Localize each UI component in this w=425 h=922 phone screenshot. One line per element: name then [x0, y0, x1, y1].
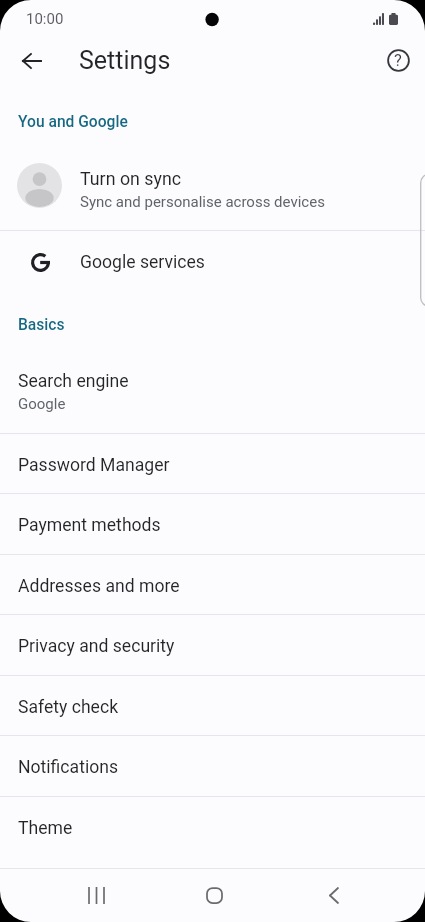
button[interactable]: Google services: [0, 230, 425, 295]
staticText: You and Google: [18, 113, 128, 131]
button[interactable]: Help and feedback: [374, 37, 422, 84]
staticText: Search engine: [18, 371, 129, 392]
button[interactable]: Navigate up: [7, 37, 55, 84]
staticText: Addresses and more: [18, 576, 180, 597]
staticText: Settings: [79, 46, 171, 75]
staticText: Theme: [18, 818, 73, 839]
button[interactable]: Recent apps: [61, 869, 131, 922]
staticText: Turn on sync: [80, 168, 182, 189]
button[interactable]: Turn on sync: [0, 140, 425, 230]
button[interactable]: Addresses and more: [0, 554, 425, 614]
staticText: 10:00: [26, 10, 64, 28]
staticText: Privacy and security: [18, 636, 175, 657]
button[interactable]: Notifications: [0, 735, 425, 795]
button[interactable]: Privacy and security: [0, 614, 425, 674]
staticText: Google services: [80, 252, 205, 273]
staticText: Password Manager: [18, 455, 170, 476]
button[interactable]: Password Manager: [0, 433, 425, 493]
staticText: Basics: [18, 316, 65, 334]
button[interactable]: Theme: [0, 796, 425, 856]
staticText: Payment methods: [18, 515, 161, 536]
staticText: Notifications: [18, 757, 119, 778]
staticText: Safety check: [18, 697, 119, 718]
staticText: Sync and personalise across devices: [80, 193, 325, 211]
staticText: Google: [18, 395, 66, 413]
button[interactable]: Safety check: [0, 675, 425, 735]
button[interactable]: Search engine: [0, 357, 425, 433]
button[interactable]: Back: [299, 869, 369, 922]
button[interactable]: Payment methods: [0, 493, 425, 553]
staticText: ?: [394, 51, 402, 70]
button[interactable]: Home: [179, 869, 249, 922]
